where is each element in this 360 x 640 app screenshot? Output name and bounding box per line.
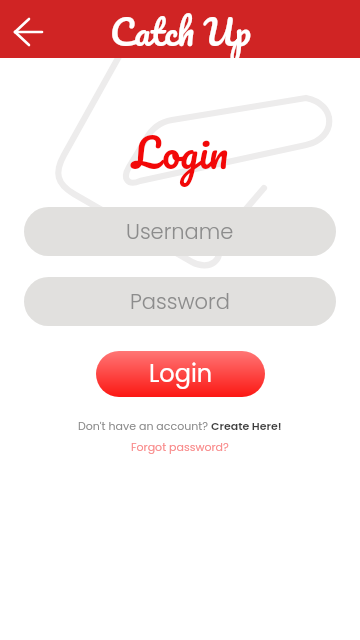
staticText: Forgot password?	[131, 439, 229, 454]
staticText: Username	[126, 217, 234, 246]
button[interactable]: Password	[24, 277, 336, 326]
staticText: Create Here!	[211, 418, 282, 433]
staticText: Don't have an account?	[78, 418, 211, 433]
staticText: Login	[149, 357, 213, 391]
button[interactable]: Login	[96, 351, 265, 397]
button[interactable]: Forgot password?	[131, 439, 229, 454]
staticText: Login	[0, 117, 360, 187]
staticText: Catch Up	[110, 0, 251, 58]
button[interactable]: Back	[5, 8, 53, 56]
staticText: Password	[130, 287, 230, 316]
button[interactable]: Create Here!	[211, 418, 282, 433]
button[interactable]: Username	[24, 207, 336, 256]
